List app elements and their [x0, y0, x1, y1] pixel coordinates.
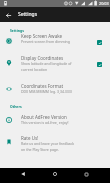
staticText: Others — [10, 104, 22, 109]
button[interactable]: Home — [48, 167, 62, 181]
staticText: Prevent screen from dimming — [21, 39, 70, 44]
button[interactable]: Keep Screen Awake — [0, 29, 110, 51]
staticText: Show latitude and longitude of current l… — [21, 61, 75, 72]
staticText: Display Coordinates — [21, 55, 64, 61]
staticText: Rate us and leave your feedback on the P… — [21, 141, 75, 152]
staticText: Rate Us! — [21, 135, 39, 141]
staticText: This version is ad-free, enjoy! — [21, 120, 69, 125]
staticText: Settings — [18, 11, 38, 18]
button[interactable]: About AdFree Version — [0, 110, 110, 130]
button[interactable]: Recent apps — [79, 167, 93, 181]
button[interactable]: Back — [16, 167, 30, 181]
button[interactable]: Navigate up — [1, 8, 15, 22]
staticText: Settings — [10, 28, 24, 33]
button[interactable]: Display Coordinates — [0, 51, 110, 73]
staticText: Coordinates Format — [21, 83, 64, 89]
button[interactable]: Keep Screen Awake — [94, 37, 105, 48]
button[interactable]: Display Coordinates — [94, 59, 105, 70]
staticText: 20:03 — [99, 1, 109, 6]
staticText: Keep Screen Awake — [21, 33, 63, 39]
button[interactable]: Coordinates Format — [0, 79, 110, 99]
staticText: About AdFree Version — [21, 114, 67, 120]
button[interactable]: Rate Us! — [0, 131, 110, 151]
staticText: DD0 MM.MMMM (eg. 3,34.333) — [21, 89, 72, 94]
